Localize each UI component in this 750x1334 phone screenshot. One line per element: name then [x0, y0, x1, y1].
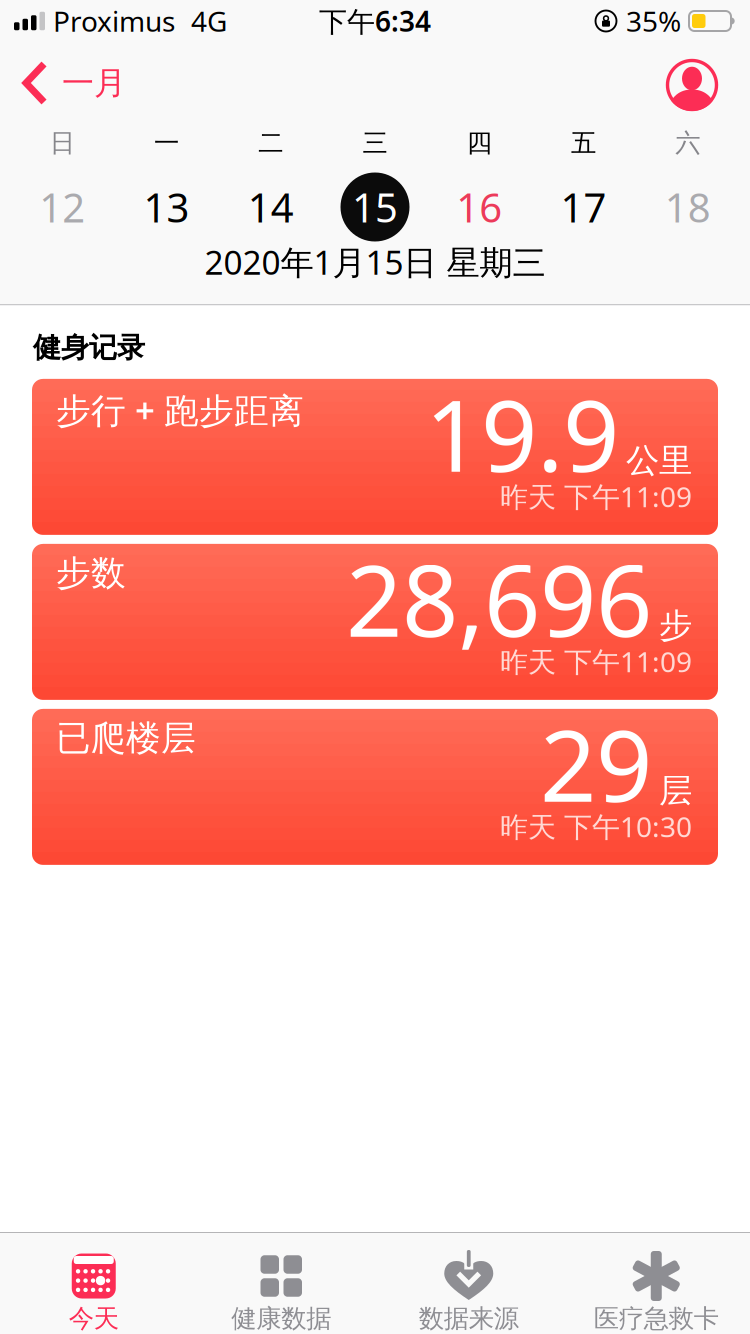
- button[interactable]: 16: [427, 167, 531, 247]
- staticText: 18: [665, 180, 711, 233]
- staticText: 29: [540, 698, 652, 829]
- staticText: 日: [50, 127, 75, 158]
- staticText: 二: [258, 127, 283, 158]
- staticText: 19.9: [425, 368, 619, 499]
- staticText: 昨天 下午10:30: [500, 808, 692, 845]
- staticText: 步行 + 跑步距离: [56, 387, 304, 433]
- button[interactable]: 医疗急救卡: [562, 1233, 750, 1334]
- staticText: 已爬楼层: [56, 717, 196, 759]
- button[interactable]: 数据来源: [375, 1233, 562, 1334]
- staticText: 公里: [626, 440, 692, 481]
- staticText: 12: [39, 180, 85, 233]
- staticText: 四: [467, 127, 492, 158]
- staticText: 15: [352, 180, 398, 233]
- staticText: Proximus: [53, 2, 175, 40]
- button[interactable]: 今天: [0, 1233, 187, 1334]
- staticText: 一月: [62, 63, 126, 103]
- button[interactable]: 步数: [32, 544, 718, 700]
- button[interactable]: 14: [219, 167, 323, 247]
- staticText: 健身记录: [33, 330, 145, 365]
- staticText: 35%: [626, 2, 681, 40]
- button[interactable]: 15: [323, 167, 427, 247]
- button[interactable]: 步行 + 跑步距离: [32, 379, 718, 535]
- button[interactable]: 18: [636, 167, 740, 247]
- button[interactable]: 13: [114, 167, 219, 247]
- staticText: 今天: [69, 1303, 119, 1334]
- staticText: 16: [456, 180, 502, 233]
- staticText: 三: [362, 127, 387, 158]
- staticText: 层: [659, 770, 692, 811]
- staticText: 医疗急救卡: [594, 1303, 719, 1334]
- staticText: 步数: [56, 552, 126, 594]
- button[interactable]: 17: [531, 167, 636, 247]
- staticText: 下午6:34: [319, 2, 431, 40]
- staticText: 17: [561, 180, 607, 233]
- staticText: 六: [675, 127, 700, 158]
- staticText: 数据来源: [419, 1303, 519, 1334]
- staticText: 健康数据: [231, 1303, 331, 1334]
- staticText: 五: [571, 127, 596, 158]
- staticText: 昨天 下午11:09: [500, 478, 692, 515]
- button[interactable]: [0, 42, 718, 111]
- button[interactable]: 一月: [0, 42, 126, 104]
- staticText: 4G: [191, 2, 227, 40]
- staticText: 28,696: [346, 533, 652, 664]
- button[interactable]: 已爬楼层: [32, 709, 718, 865]
- staticText: 2020年1月15日 星期三: [204, 240, 545, 284]
- staticText: 昨天 下午11:09: [500, 643, 692, 680]
- staticText: 一: [154, 127, 179, 158]
- staticText: 13: [143, 180, 189, 233]
- staticText: 步: [659, 605, 692, 646]
- button[interactable]: 12: [10, 167, 114, 247]
- staticText: 14: [248, 180, 294, 233]
- button[interactable]: 健康数据: [187, 1233, 375, 1334]
